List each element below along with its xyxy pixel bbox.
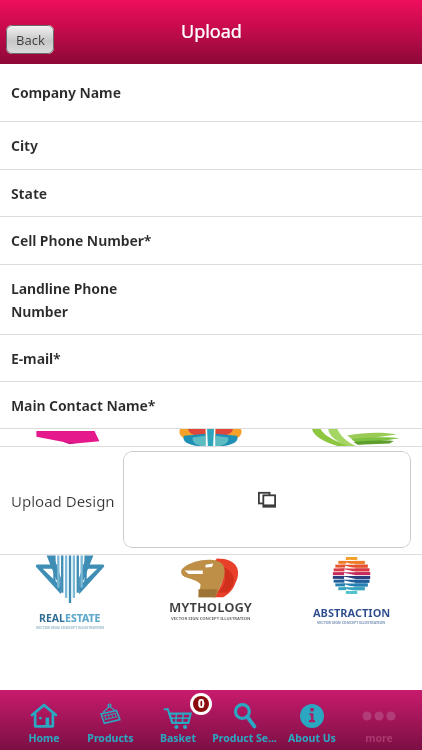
button[interactable]: 0 [144, 690, 211, 750]
button[interactable]: Green leaf logo [281, 429, 422, 446]
staticText: ESTATE [65, 611, 101, 625]
staticText: State [11, 184, 48, 203]
staticText: Cell Phone Number* [11, 231, 152, 250]
staticText: 0 [198, 696, 205, 712]
button[interactable]: Company Name [0, 64, 422, 121]
button[interactable]: Cell Phone Number* [0, 217, 422, 264]
staticText: Company Name [11, 83, 121, 102]
staticText: Basket [160, 731, 196, 745]
staticText: Main Contact Name* [11, 396, 156, 415]
staticText: E-mail* [11, 349, 61, 368]
button[interactable]: City [0, 122, 422, 169]
button[interactable]: Home [10, 690, 77, 750]
button[interactable]: Landline Phone Number [0, 265, 422, 334]
button[interactable]: Main Contact Name* [0, 382, 422, 428]
button[interactable]: About Us [278, 690, 345, 750]
staticText: VECTOR SIGN CONCEPT ILLUSTRATION [317, 620, 386, 625]
staticText: Upload [181, 19, 242, 44]
staticText: Back [16, 31, 45, 49]
button[interactable]: Upload design image [123, 451, 411, 548]
button[interactable]: State [0, 170, 422, 216]
staticText: VECTOR SIGN CONCEPT ILLUSTRATION [171, 616, 251, 622]
staticText: ABSTRACTION [313, 605, 391, 620]
button[interactable]: Abstraction logo [281, 555, 422, 635]
staticText: Home [28, 731, 60, 745]
staticText: Product Se... [212, 731, 277, 745]
button[interactable]: more [345, 690, 412, 750]
button[interactable]: Butterfly logo [140, 429, 281, 446]
button[interactable]: Pink logo [0, 429, 140, 446]
button[interactable]: Mythology logo [140, 555, 281, 635]
staticText: Products [87, 731, 134, 745]
button[interactable]: Real Estate logo [0, 555, 140, 635]
staticText: more [365, 731, 393, 745]
button[interactable]: Back [6, 25, 54, 54]
staticText: About Us [288, 731, 336, 745]
staticText: REAL [39, 611, 65, 625]
staticText: VECTOR SIGN CONCEPT ILLUSTRATION [36, 625, 105, 630]
staticText: City [11, 136, 38, 155]
button[interactable]: E-mail* [0, 335, 422, 381]
button[interactable]: Products [77, 690, 144, 750]
staticText: Upload Design [11, 491, 115, 511]
staticText: MYTHOLOGY [169, 598, 252, 616]
staticText: Landline Phone Number [11, 279, 118, 321]
button[interactable]: Product Se... [211, 690, 278, 750]
